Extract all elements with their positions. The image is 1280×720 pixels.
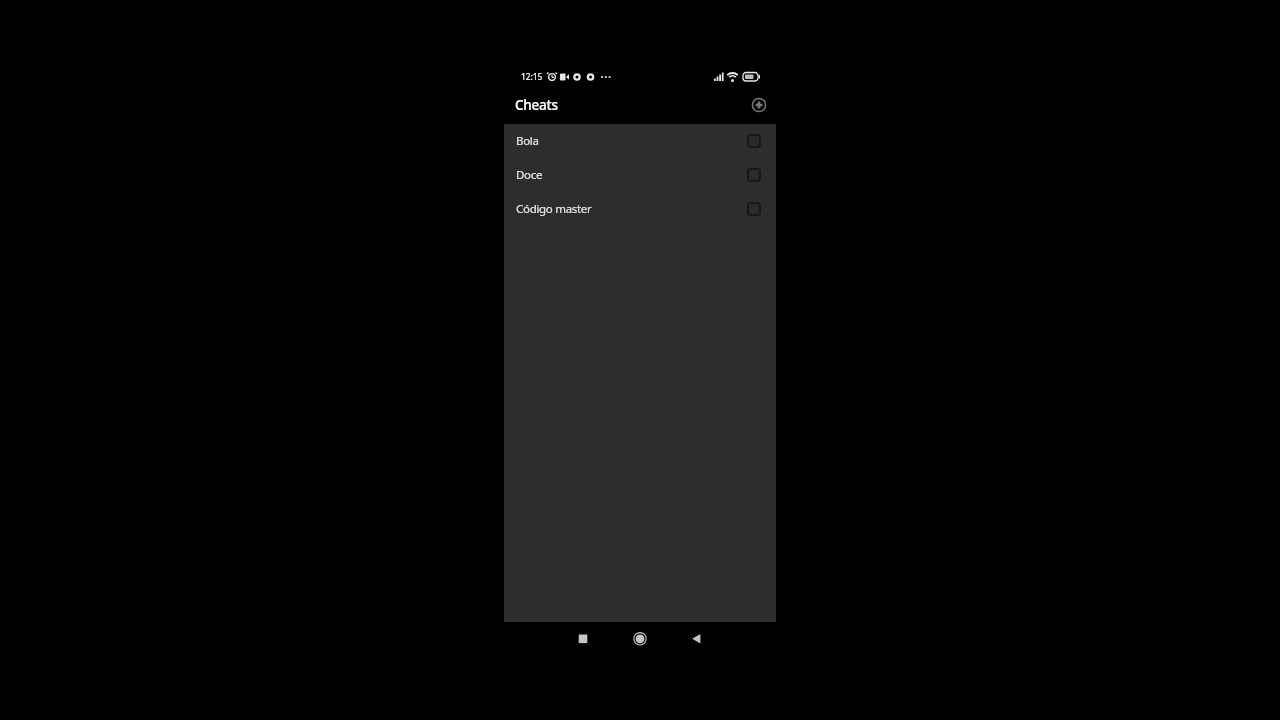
button[interactable] (624, 623, 656, 655)
staticText: Cheats (515, 96, 558, 114)
button[interactable] (567, 623, 599, 655)
button[interactable] (680, 623, 712, 655)
button[interactable] (747, 168, 761, 182)
button[interactable] (749, 95, 769, 115)
staticText: Código master (516, 201, 747, 217)
button[interactable] (747, 202, 761, 216)
button[interactable]: Código master (504, 192, 776, 226)
staticText: Bola (516, 133, 747, 149)
button[interactable]: Doce (504, 158, 776, 192)
staticText: Doce (516, 167, 747, 183)
button[interactable] (747, 134, 761, 148)
staticText: 12:15 (521, 71, 543, 83)
button[interactable]: Bola (504, 124, 776, 158)
